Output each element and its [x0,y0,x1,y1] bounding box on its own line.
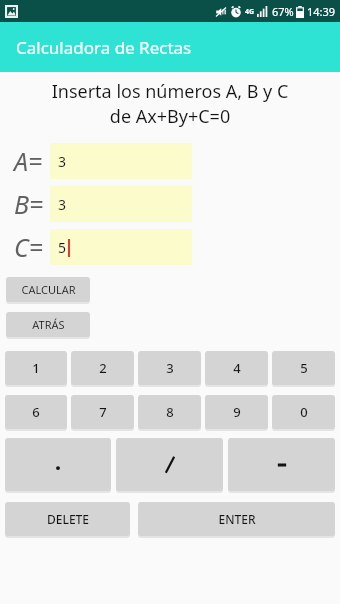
staticText: 9 [233,403,241,421]
button[interactable]: 3 [50,186,192,222]
button[interactable]: 0 [272,395,335,429]
staticText: 2 [99,359,107,377]
staticText: Inserta los números A, B y C de Ax+By+C=… [10,79,330,129]
staticText: 7 [99,403,107,421]
button[interactable]: 1 [5,351,67,385]
staticText: 8 [166,403,174,421]
button[interactable]: 3 [138,351,201,385]
staticText: CALCULAR [21,282,76,297]
button[interactable]: 5 [272,351,335,385]
staticText: 14:39 [307,4,336,19]
button[interactable]: 7 [71,395,134,429]
staticText: 5 [300,359,308,377]
staticText: C= [14,230,43,264]
button[interactable]: CALCULAR [6,277,90,302]
staticText: B= [14,187,44,221]
button[interactable]: 8 [138,395,201,429]
button[interactable]: 3 [50,143,192,179]
button[interactable]: Decimal point [5,438,111,491]
button[interactable]: ENTER [138,502,335,536]
button[interactable]: ATRÁS [6,312,90,337]
button[interactable]: 9 [205,395,268,429]
staticText: 67% [272,4,294,19]
staticText: 0 [300,403,308,421]
staticText: 3 [58,195,67,214]
staticText: 3 [58,152,67,171]
button[interactable]: 6 [5,395,67,429]
button[interactable]: Minus [228,438,335,491]
staticText: DELETE [47,511,89,527]
button[interactable]: 4 [205,351,268,385]
staticText: 4 [233,359,241,377]
staticText: 3 [166,359,174,377]
staticText: A= [14,144,43,178]
button[interactable]: Divide [116,438,223,491]
staticText: 1 [32,359,40,377]
staticText: 5 [58,238,67,257]
staticText: ENTER [218,511,256,527]
staticText: Calculadora de Rectas [16,36,192,59]
button[interactable]: DELETE [5,502,130,536]
staticText: ATRÁS [32,317,65,332]
button[interactable]: 2 [71,351,134,385]
staticText: 6 [32,403,40,421]
button[interactable]: 5 [50,229,192,265]
staticText: 4G [245,7,255,17]
